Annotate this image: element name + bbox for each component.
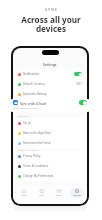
button[interactable]: Sync with iCloud — [10, 99, 90, 112]
staticText: Across all your devices — [21, 14, 81, 34]
staticText: Settings — [73, 194, 81, 197]
button[interactable]: Privacy Policy — [15, 151, 85, 161]
button[interactable]: Terms & Conditions — [15, 161, 85, 171]
staticText: Sync with iCloud — [20, 101, 46, 105]
staticText: Terms & Conditions — [23, 164, 49, 168]
staticText: ABOUT & LEGAL — [18, 148, 39, 151]
staticText: Settings — [43, 62, 57, 67]
button[interactable]: Toggle — [79, 100, 87, 105]
staticText: Rate on the App Store — [23, 131, 52, 135]
button[interactable]: Notifications — [15, 69, 85, 79]
button[interactable]: Cards — [51, 188, 66, 201]
staticText: Automatic Backup — [23, 92, 47, 96]
button[interactable]: Settings — [69, 188, 84, 201]
button[interactable]: Stats — [34, 188, 49, 201]
staticText: Cards — [56, 194, 62, 197]
button[interactable]: Default Currency — [15, 79, 85, 89]
staticText: Notifications — [23, 72, 40, 76]
button[interactable]: Change My Preferences — [15, 171, 85, 181]
staticText: DEVICES — [18, 114, 29, 117]
staticText: Privacy Policy — [23, 154, 41, 158]
button[interactable]: Rate on the App Store — [15, 128, 85, 138]
staticText: Recommend a Friend — [23, 141, 51, 145]
button[interactable]: Automatic Backup — [15, 89, 85, 99]
staticText: Home — [21, 194, 27, 197]
staticText: Stats — [39, 194, 44, 197]
staticText: USD — [76, 82, 82, 86]
staticText: SYNC — [45, 7, 58, 12]
staticText: Change My Preferences — [23, 174, 54, 178]
staticText: Keep data up to date — [13, 106, 38, 109]
button[interactable]: Home — [16, 188, 31, 201]
button[interactable]: Recommend a Friend — [15, 138, 85, 148]
staticText: Tip Jar — [23, 121, 32, 125]
button[interactable]: Toggle — [74, 72, 82, 76]
button[interactable]: Tip Jar — [15, 118, 85, 128]
staticText: Default Currency — [23, 82, 45, 86]
